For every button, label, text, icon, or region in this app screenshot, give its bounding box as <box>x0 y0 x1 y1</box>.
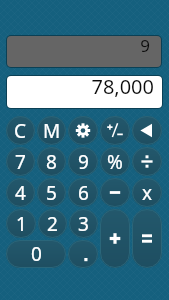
staticText: 2 <box>47 211 58 237</box>
button[interactable]: 0 <box>6 240 66 268</box>
staticText: 9 <box>140 34 150 57</box>
staticText: 9 <box>78 149 89 175</box>
staticText: M <box>43 118 61 144</box>
staticText: 4 <box>15 180 26 206</box>
staticText: % <box>107 149 123 175</box>
button[interactable]: Plus minus sign <box>100 116 130 145</box>
staticText: 1 <box>16 211 27 237</box>
button[interactable]: 7 <box>6 147 35 176</box>
button[interactable]: Divide <box>132 147 162 176</box>
staticText: 5 <box>46 180 57 206</box>
button[interactable]: 6 <box>68 178 98 207</box>
staticText: 78,000 <box>91 73 154 100</box>
staticText: x <box>142 180 153 206</box>
button[interactable]: Equals <box>132 209 162 268</box>
staticText: 7 <box>15 149 26 175</box>
button[interactable]: Decimal point <box>68 240 98 268</box>
button[interactable]: 4 <box>6 178 35 207</box>
button[interactable]: Plus <box>100 209 130 268</box>
button[interactable]: 5 <box>37 178 66 207</box>
staticText: 6 <box>78 180 89 206</box>
button[interactable]: Minus <box>100 178 130 207</box>
button[interactable]: Backspace <box>132 116 162 145</box>
button[interactable]: 3 <box>69 209 98 238</box>
button[interactable]: M <box>37 116 66 145</box>
staticText: 0 <box>31 241 42 267</box>
button[interactable]: C <box>6 116 35 145</box>
button[interactable]: 2 <box>38 209 67 238</box>
button[interactable]: 9 <box>68 147 98 176</box>
button[interactable]: % <box>100 147 130 176</box>
button[interactable]: 1 <box>6 209 36 238</box>
button[interactable]: 8 <box>37 147 66 176</box>
button[interactable]: Settings <box>68 116 98 145</box>
staticText: 3 <box>78 211 89 237</box>
staticText: 8 <box>46 149 57 175</box>
button[interactable]: x <box>132 178 162 207</box>
staticText: C <box>14 118 27 144</box>
